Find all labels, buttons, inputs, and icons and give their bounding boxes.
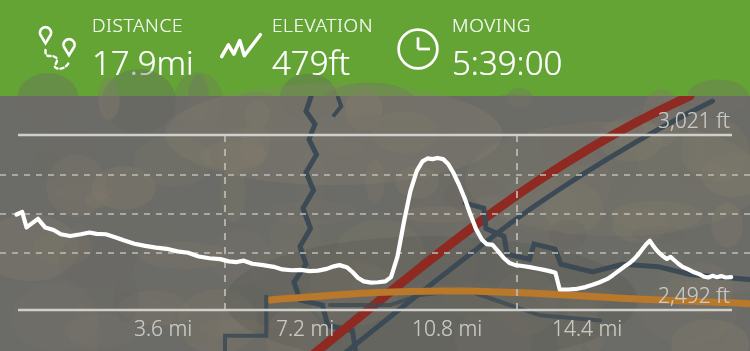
staticText: 14.4 mi <box>537 314 637 343</box>
staticText: ELEVATION <box>272 12 374 38</box>
staticText: 2,492 ft <box>658 281 730 310</box>
staticText: 3,021 ft <box>658 106 730 135</box>
staticText: 5:39:00 <box>452 40 563 85</box>
button[interactable]: DISTANCE <box>34 12 194 85</box>
staticText: 10.8 mi <box>397 314 497 343</box>
staticText: 7.2 mi <box>255 314 355 343</box>
staticText: 17.9mi <box>92 40 194 85</box>
staticText: MOVING <box>452 12 532 38</box>
button[interactable]: ELEVATION <box>220 12 374 85</box>
staticText: 3.6 mi <box>113 314 213 343</box>
staticText: DISTANCE <box>92 12 184 38</box>
button[interactable]: MOVING <box>396 12 563 85</box>
staticText: 479ft <box>272 40 350 85</box>
button[interactable]: Elevation profile chart <box>0 96 750 351</box>
